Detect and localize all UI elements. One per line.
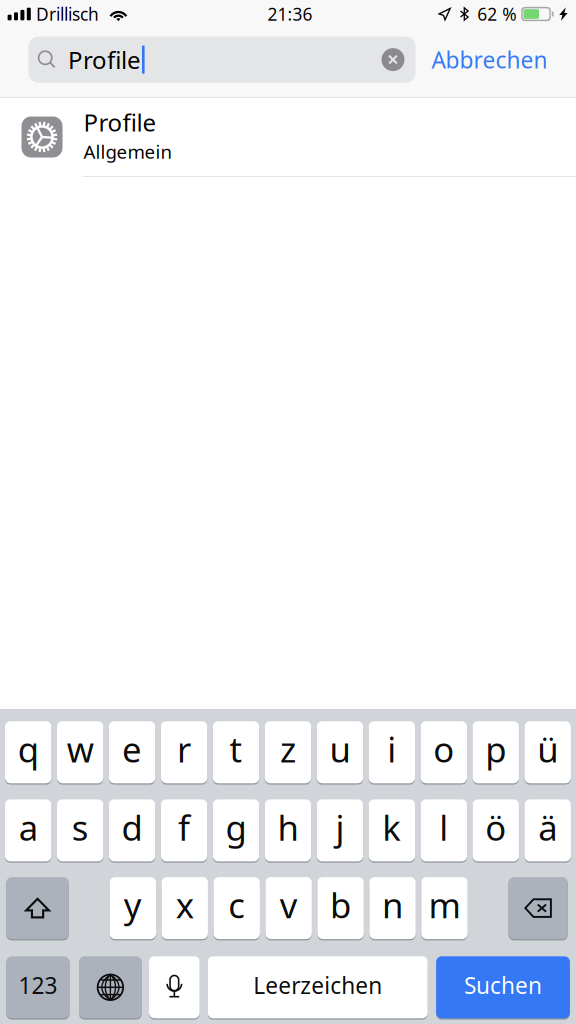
button[interactable]: d (109, 798, 155, 863)
button[interactable]: u (317, 720, 363, 785)
staticText: Allgemein (83, 139, 172, 164)
staticText: Suchen (464, 970, 542, 1000)
staticText: 62 % (477, 2, 516, 25)
button[interactable]: b (317, 876, 364, 940)
button[interactable]: ä (524, 798, 571, 863)
staticText: u (329, 726, 350, 772)
staticText: e (122, 726, 142, 772)
staticText: h (277, 804, 298, 850)
button[interactable]: ö (472, 798, 519, 863)
button[interactable]: Abbrechen (415, 36, 563, 83)
staticText: m (428, 882, 460, 928)
button[interactable]: k (369, 798, 415, 863)
staticText: Abbrechen (431, 44, 547, 75)
button[interactable]: s (57, 798, 103, 863)
button[interactable]: h (265, 798, 311, 863)
button[interactable]: p (472, 720, 519, 785)
staticText: Profile (68, 44, 141, 76)
staticText: z (280, 726, 296, 772)
staticText: p (485, 726, 506, 772)
button[interactable]: ü (524, 720, 571, 785)
staticText: g (225, 804, 246, 850)
button[interactable]: g (213, 798, 259, 863)
staticText: s (72, 804, 89, 850)
staticText: y (124, 882, 142, 928)
button[interactable]: r (161, 720, 207, 785)
button[interactable]: Löschen (508, 876, 568, 940)
staticText: j (335, 804, 344, 850)
button[interactable]: 123 (6, 955, 69, 1020)
button[interactable]: f (161, 798, 207, 863)
staticText: v (280, 882, 298, 928)
button[interactable]: Umschalten (6, 876, 69, 940)
button[interactable]: Suchen (436, 955, 570, 1020)
staticText: r (177, 726, 191, 772)
button[interactable]: i (369, 720, 415, 785)
button[interactable]: n (369, 876, 416, 940)
button[interactable]: c (213, 876, 260, 940)
staticText: q (18, 726, 39, 772)
button[interactable]: e (109, 720, 155, 785)
staticText: ü (537, 726, 558, 772)
button[interactable]: x (162, 876, 208, 940)
button[interactable]: Tastatur wechseln (79, 955, 142, 1020)
button[interactable]: q (5, 720, 51, 785)
staticText: Profile (83, 106, 156, 138)
button[interactable]: j (317, 798, 363, 863)
staticText: 123 (18, 970, 57, 1000)
staticText: x (176, 882, 194, 928)
button[interactable]: Leerzeichen (208, 955, 428, 1020)
button[interactable]: v (265, 876, 312, 940)
staticText: f (178, 804, 190, 850)
button[interactable]: w (57, 720, 103, 785)
staticText: o (433, 726, 454, 772)
button[interactable]: Profile (0, 98, 576, 177)
staticText: w (67, 726, 94, 772)
staticText: 21:36 (267, 2, 312, 25)
staticText: b (330, 882, 351, 928)
staticText: l (439, 804, 448, 850)
button[interactable]: z (265, 720, 311, 785)
staticText: ä (538, 804, 557, 850)
button[interactable]: a (5, 798, 51, 863)
button[interactable]: m (421, 876, 468, 940)
staticText: Leerzeichen (253, 970, 382, 1000)
staticText: Drillisch (36, 2, 99, 25)
staticText: k (382, 804, 401, 850)
staticText: a (19, 804, 38, 850)
button[interactable]: Diktieren (149, 955, 200, 1020)
staticText: ö (485, 804, 506, 850)
staticText: i (387, 726, 396, 772)
button[interactable]: y (110, 876, 156, 940)
staticText: t (229, 726, 242, 772)
staticText: n (382, 882, 403, 928)
staticText: c (228, 882, 245, 928)
button[interactable]: l (421, 798, 467, 863)
button[interactable]: Suchtext löschen (381, 48, 415, 71)
button[interactable]: t (213, 720, 259, 785)
staticText: d (122, 804, 143, 850)
button[interactable]: o (421, 720, 467, 785)
